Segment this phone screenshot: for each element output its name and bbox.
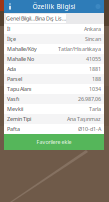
staticText: Ø10-d1-A bbox=[78, 125, 101, 133]
staticText: 188 bbox=[92, 75, 101, 83]
button[interactable]: Kapat bbox=[92, 0, 104, 13]
staticText: 26.987,06 bbox=[78, 95, 101, 103]
staticText: 1034 bbox=[89, 85, 101, 93]
staticText: Parsel bbox=[7, 75, 22, 83]
staticText: İlçe bbox=[7, 35, 16, 43]
button[interactable]: Favorilere ekle bbox=[4, 134, 104, 150]
staticText: Tatlar/Hisarlıkaya bbox=[58, 45, 101, 53]
staticText: Ankara bbox=[84, 25, 101, 33]
button[interactable]: Bilgi bbox=[4, 0, 16, 13]
staticText: 41055 bbox=[86, 55, 101, 63]
staticText: Favorilere ekle bbox=[36, 138, 71, 146]
staticText: Vasfı bbox=[7, 95, 19, 103]
staticText: Zemin Tipi bbox=[7, 115, 31, 123]
staticText: İl bbox=[7, 25, 10, 33]
staticText: Özellik Bilgisi bbox=[32, 2, 75, 11]
staticText: Genel Bilgiler bbox=[6, 15, 35, 22]
staticText: Tarla bbox=[89, 105, 101, 113]
staticText: Ana Taşınmaz bbox=[67, 115, 101, 123]
staticText: Ada bbox=[7, 65, 16, 73]
staticText: Bina Dış Listesi bbox=[35, 15, 66, 22]
staticText: Mahalle/Köy bbox=[7, 45, 37, 53]
staticText: Sincan bbox=[85, 35, 101, 43]
staticText: Mahalle No bbox=[7, 55, 34, 63]
staticText: Tapu Alanı bbox=[7, 85, 31, 93]
button[interactable]: Genel Bilgiler bbox=[6, 14, 35, 23]
button[interactable]: Bina Dış Listesi bbox=[35, 14, 66, 23]
staticText: Mevkii bbox=[7, 105, 23, 113]
staticText: Pafta bbox=[7, 125, 20, 133]
staticText: 1881 bbox=[89, 65, 101, 73]
